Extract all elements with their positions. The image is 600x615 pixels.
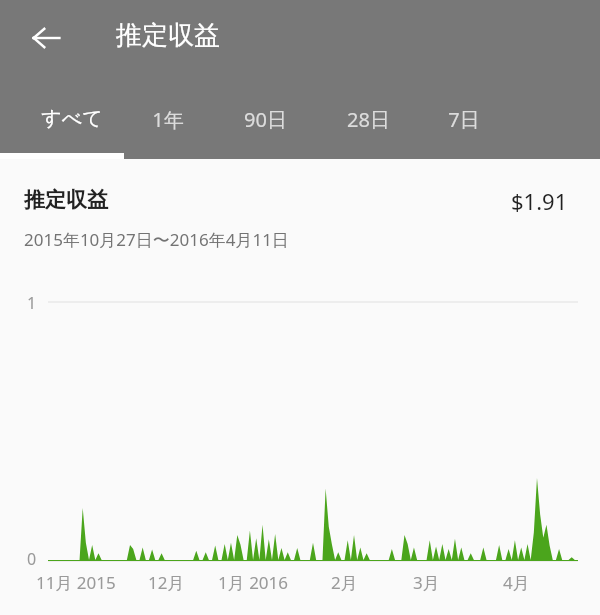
staticText: 3月 [413, 571, 440, 594]
button[interactable]: Back [22, 14, 70, 62]
button[interactable]: すべて [20, 96, 124, 159]
staticText: 1月 2016 [218, 571, 289, 594]
staticText: 11月 2015 [36, 571, 116, 594]
button[interactable]: 7日 [438, 96, 490, 159]
staticText: 2015年10月27日〜2016年4月11日 [24, 228, 289, 251]
staticText: 推定収益 [24, 187, 108, 213]
staticText: 90日 [244, 106, 287, 133]
staticText: 0 [27, 548, 37, 570]
staticText: 4月 [503, 571, 530, 594]
button[interactable]: 90日 [232, 96, 298, 159]
staticText: 2月 [331, 571, 358, 594]
staticText: 1年 [152, 106, 184, 133]
button[interactable]: 28日 [335, 96, 401, 159]
staticText: すべて [41, 106, 103, 131]
staticText: $1.91 [511, 186, 568, 216]
staticText: 1 [27, 292, 37, 314]
staticText: 推定収益 [116, 19, 220, 52]
button[interactable]: 1年 [144, 96, 192, 159]
staticText: 28日 [347, 106, 390, 133]
staticText: 7日 [448, 106, 480, 133]
staticText: 12月 [148, 571, 185, 594]
